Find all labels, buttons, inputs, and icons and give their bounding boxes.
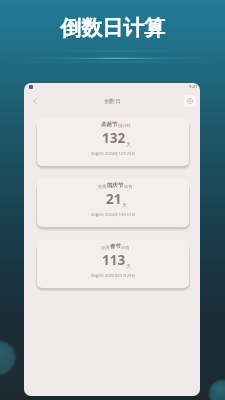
staticText: 倒数日 xyxy=(104,98,121,105)
staticText: 还有 xyxy=(121,245,130,250)
staticText: 目标日: 2024年12月25日 xyxy=(91,151,136,156)
button[interactable]: 圣诞节 xyxy=(37,118,189,166)
staticText: 还有 xyxy=(124,184,133,189)
button[interactable]: Back xyxy=(28,94,42,108)
staticText: 春节 xyxy=(110,243,121,250)
staticText: 距离 xyxy=(98,184,107,189)
staticText: 圣诞节 xyxy=(101,121,118,128)
staticText: 天 xyxy=(122,202,127,208)
staticText: 目标日: 2025年01月29日 xyxy=(91,273,136,278)
staticText: 天 xyxy=(126,263,131,269)
staticText: 132 xyxy=(102,129,126,147)
staticText: 21 xyxy=(106,190,122,208)
button[interactable]: 距离 xyxy=(37,240,189,288)
staticText: 距离 xyxy=(101,245,110,250)
staticText: 目标日: 2024年10月01日 xyxy=(91,212,136,217)
staticText: 113 xyxy=(102,251,126,269)
staticText: 9:41 xyxy=(189,84,198,90)
staticText: 倒数日计算 xyxy=(0,15,225,41)
staticText: 国庆节 xyxy=(107,182,124,189)
button[interactable]: 距离 xyxy=(37,179,189,227)
staticText: 天 xyxy=(126,141,131,147)
staticText: 倒计时 xyxy=(118,123,131,128)
button[interactable]: Add countdown xyxy=(184,95,196,107)
